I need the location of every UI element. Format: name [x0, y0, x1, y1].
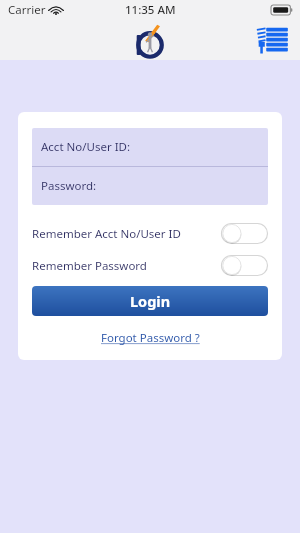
button[interactable]: Toggle [221, 255, 268, 276]
button[interactable]: Remember Acct No/User ID [32, 223, 268, 244]
staticText: 11:35 AM [125, 2, 176, 18]
button[interactable]: Forgot Password ? [95, 328, 206, 348]
button[interactable]: Toggle [221, 223, 268, 244]
button[interactable]: Remember Password [32, 255, 268, 276]
staticText: Login [130, 291, 171, 311]
staticText: Forgot Password ? [101, 330, 200, 346]
button[interactable]: Password: [32, 167, 268, 205]
button[interactable]: Menu [254, 23, 290, 57]
staticText: Carrier [8, 2, 46, 18]
staticText: Remember Acct No/User ID [32, 226, 181, 242]
button[interactable]: Login [32, 286, 268, 316]
staticText: Password: [41, 178, 97, 194]
staticText: Remember Password [32, 258, 147, 274]
staticText: Acct No/User ID: [41, 139, 131, 155]
button[interactable]: Dominion logo [130, 21, 170, 59]
button[interactable]: Acct No/User ID: [32, 128, 268, 166]
